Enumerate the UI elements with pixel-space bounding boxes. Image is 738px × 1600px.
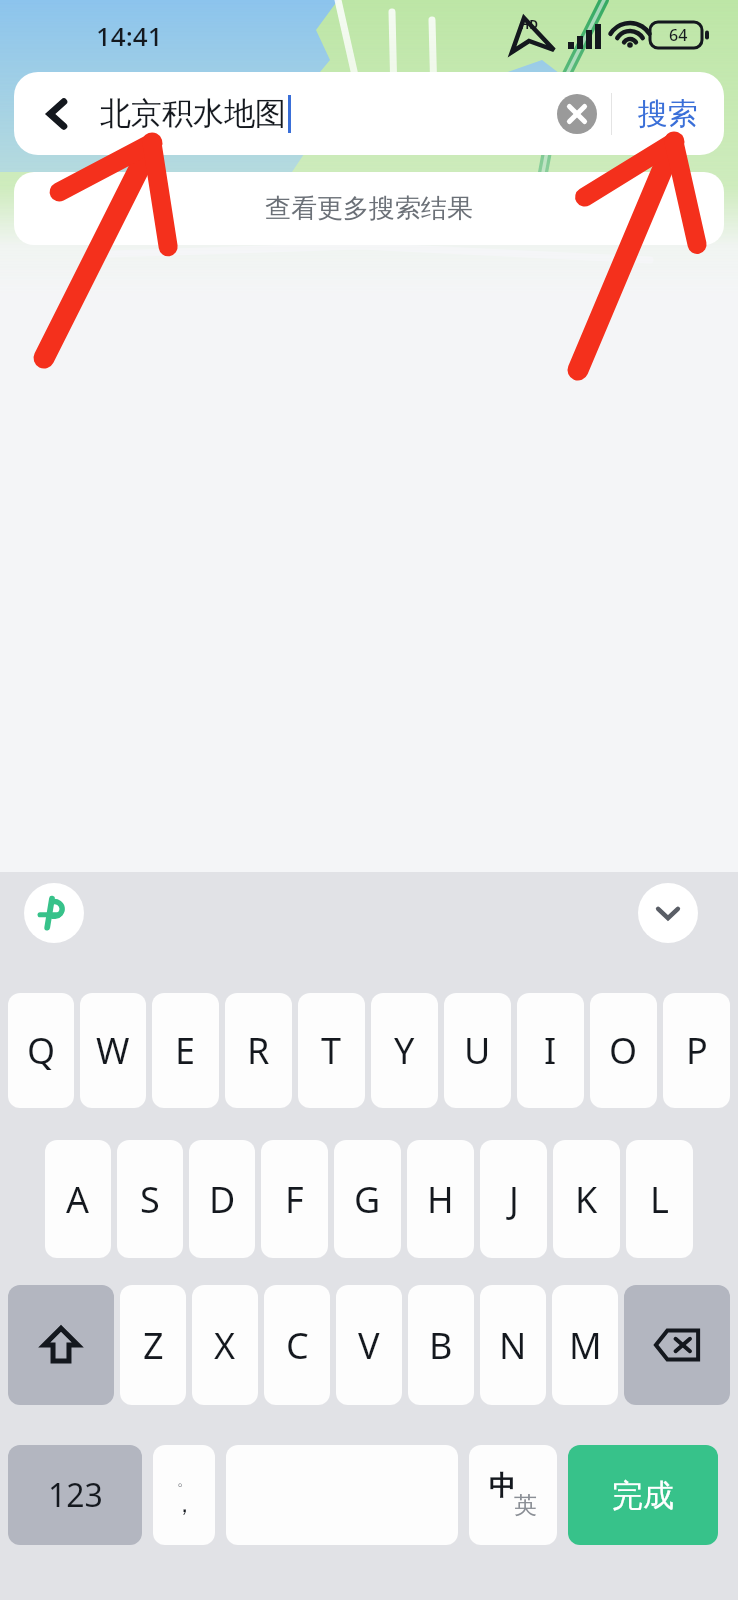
button[interactable]: S xyxy=(117,1140,183,1258)
staticText: Y xyxy=(394,1026,415,1075)
staticText: H xyxy=(427,1175,454,1224)
staticText: W xyxy=(96,1026,130,1075)
staticText: V xyxy=(358,1321,380,1370)
staticText: ， xyxy=(173,1490,196,1519)
button[interactable]: 搜索 xyxy=(612,72,724,155)
staticText: T xyxy=(321,1026,342,1075)
staticText: F xyxy=(285,1175,304,1224)
staticText: Q xyxy=(27,1026,56,1075)
staticText: S xyxy=(140,1175,160,1224)
button[interactable]: Punctuation xyxy=(153,1445,215,1545)
button[interactable]: A xyxy=(45,1140,111,1258)
staticText: O xyxy=(609,1026,638,1075)
button[interactable]: B xyxy=(408,1285,474,1405)
button[interactable]: Hide keyboard xyxy=(638,883,698,943)
button[interactable]: N xyxy=(480,1285,546,1405)
button[interactable]: M xyxy=(552,1285,618,1405)
staticText: C xyxy=(286,1321,309,1370)
staticText: 英 xyxy=(514,1491,537,1520)
staticText: X xyxy=(214,1321,236,1370)
staticText: I xyxy=(544,1026,557,1075)
button[interactable]: Q xyxy=(8,993,74,1108)
button[interactable]: K xyxy=(553,1140,620,1258)
staticText: R xyxy=(247,1026,270,1075)
button[interactable]: X xyxy=(192,1285,258,1405)
staticText: 。 xyxy=(177,1471,192,1490)
button[interactable]: 查看更多搜索结果 xyxy=(14,172,724,245)
button[interactable]: Z xyxy=(120,1285,186,1405)
button[interactable]: O xyxy=(590,993,657,1108)
button[interactable]: Shift xyxy=(8,1285,114,1405)
button[interactable]: P xyxy=(663,993,730,1108)
staticText: HD xyxy=(520,16,538,32)
button[interactable]: D xyxy=(189,1140,255,1258)
button[interactable]: Chinese English toggle xyxy=(469,1445,557,1545)
button[interactable]: 123 xyxy=(8,1445,142,1545)
staticText: K xyxy=(575,1175,598,1224)
button[interactable]: C xyxy=(264,1285,330,1405)
button[interactable]: J xyxy=(480,1140,547,1258)
staticText: 完成 xyxy=(612,1476,674,1515)
staticText: A xyxy=(66,1175,90,1224)
button[interactable]: U xyxy=(444,993,511,1108)
staticText: E xyxy=(175,1026,196,1075)
button[interactable]: V xyxy=(336,1285,402,1405)
button[interactable]: I xyxy=(517,993,584,1108)
button[interactable]: Input method xyxy=(24,883,84,943)
button[interactable]: L xyxy=(626,1140,693,1258)
button[interactable]: Back xyxy=(14,72,100,155)
button[interactable]: R xyxy=(225,993,292,1108)
button[interactable]: G xyxy=(334,1140,401,1258)
button[interactable]: T xyxy=(298,993,365,1108)
staticText: D xyxy=(209,1175,236,1224)
staticText: 123 xyxy=(48,1473,103,1517)
button[interactable]: W xyxy=(80,993,146,1108)
button[interactable]: Y xyxy=(371,993,438,1108)
button[interactable]: Clear text xyxy=(543,80,611,148)
staticText: J xyxy=(509,1175,519,1224)
staticText: P xyxy=(686,1026,708,1075)
staticText: 查看更多搜索结果 xyxy=(265,192,473,225)
staticText: 搜索 xyxy=(638,95,698,133)
staticText: N xyxy=(499,1321,527,1370)
staticText: Z xyxy=(143,1321,164,1370)
staticText: U xyxy=(464,1026,491,1075)
button[interactable]: 完成 xyxy=(568,1445,718,1545)
staticText: B xyxy=(429,1321,453,1370)
button[interactable]: Backspace xyxy=(624,1285,730,1405)
button[interactable]: F xyxy=(261,1140,328,1258)
staticText: M xyxy=(569,1321,602,1370)
staticText: G xyxy=(354,1175,381,1224)
button[interactable]: E xyxy=(152,993,219,1108)
staticText: L xyxy=(650,1175,669,1224)
staticText: 北京积水地图 xyxy=(100,94,286,133)
staticText: 64 xyxy=(669,24,688,46)
button[interactable]: H xyxy=(407,1140,474,1258)
staticText: 中 xyxy=(489,1469,516,1503)
staticText: 14:41 xyxy=(96,18,163,53)
